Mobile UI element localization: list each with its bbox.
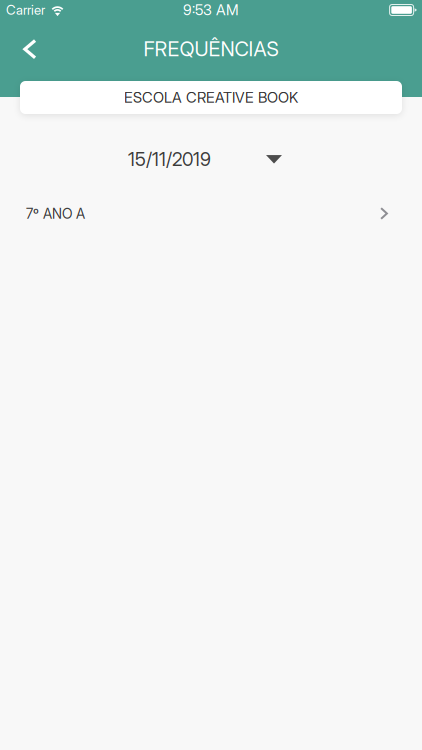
button[interactable]: 7º ANO A — [0, 192, 422, 236]
button[interactable]: 15/11/2019 — [128, 140, 282, 179]
staticText: FREQUÊNCIAS — [143, 37, 278, 61]
staticText: 9:53 AM — [183, 1, 239, 19]
staticText: Carrier — [6, 2, 45, 18]
staticText: ESCOLA CREATIVE BOOK — [124, 89, 298, 106]
staticText: 7º ANO A — [26, 205, 85, 222]
staticText: 15/11/2019 — [128, 148, 211, 171]
button[interactable]: ESCOLA CREATIVE BOOK — [20, 81, 402, 114]
button[interactable]: Back — [12, 27, 48, 71]
